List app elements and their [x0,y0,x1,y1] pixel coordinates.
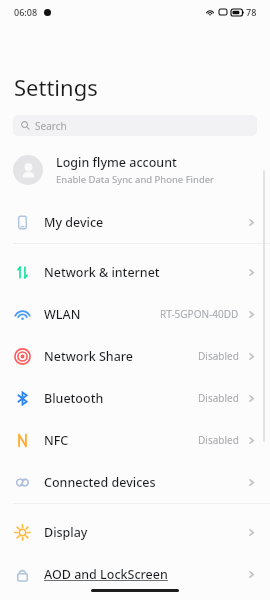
staticText: Disabled [198,433,239,447]
staticText: Bluetooth [44,390,104,407]
button[interactable]: Login flyme account [0,148,270,192]
button[interactable]: Bluetooth [0,377,270,419]
staticText: Disabled [198,391,239,405]
button[interactable]: NFC [0,419,270,461]
staticText: Disabled [198,349,239,363]
staticText: Settings [14,72,98,102]
staticText: 06:08 [14,6,38,18]
staticText: Network & internet [44,264,160,281]
button[interactable]: Network & internet [0,251,270,293]
button[interactable]: Connected devices [0,461,270,503]
button[interactable]: Display [0,511,270,553]
staticText: AOD and LockScreen [44,566,168,583]
staticText: Enable Data Sync and Phone Finder [56,173,215,186]
button[interactable]: My device [0,201,270,243]
button[interactable]: Search [13,115,257,136]
staticText: WLAN [44,306,81,323]
staticText: NFC [44,432,69,449]
button[interactable]: AOD and LockScreen [0,553,270,595]
staticText: Search [35,119,67,133]
button[interactable]: Network Share [0,335,270,377]
staticText: My device [44,214,104,231]
button[interactable]: WLAN [0,293,270,335]
staticText: Display [44,524,88,541]
staticText: Login flyme account [56,154,177,171]
staticText: Network Share [44,348,133,365]
staticText: 78 [246,6,257,18]
staticText: RT-5GPON-40DD [160,307,239,321]
staticText: Connected devices [44,474,156,491]
